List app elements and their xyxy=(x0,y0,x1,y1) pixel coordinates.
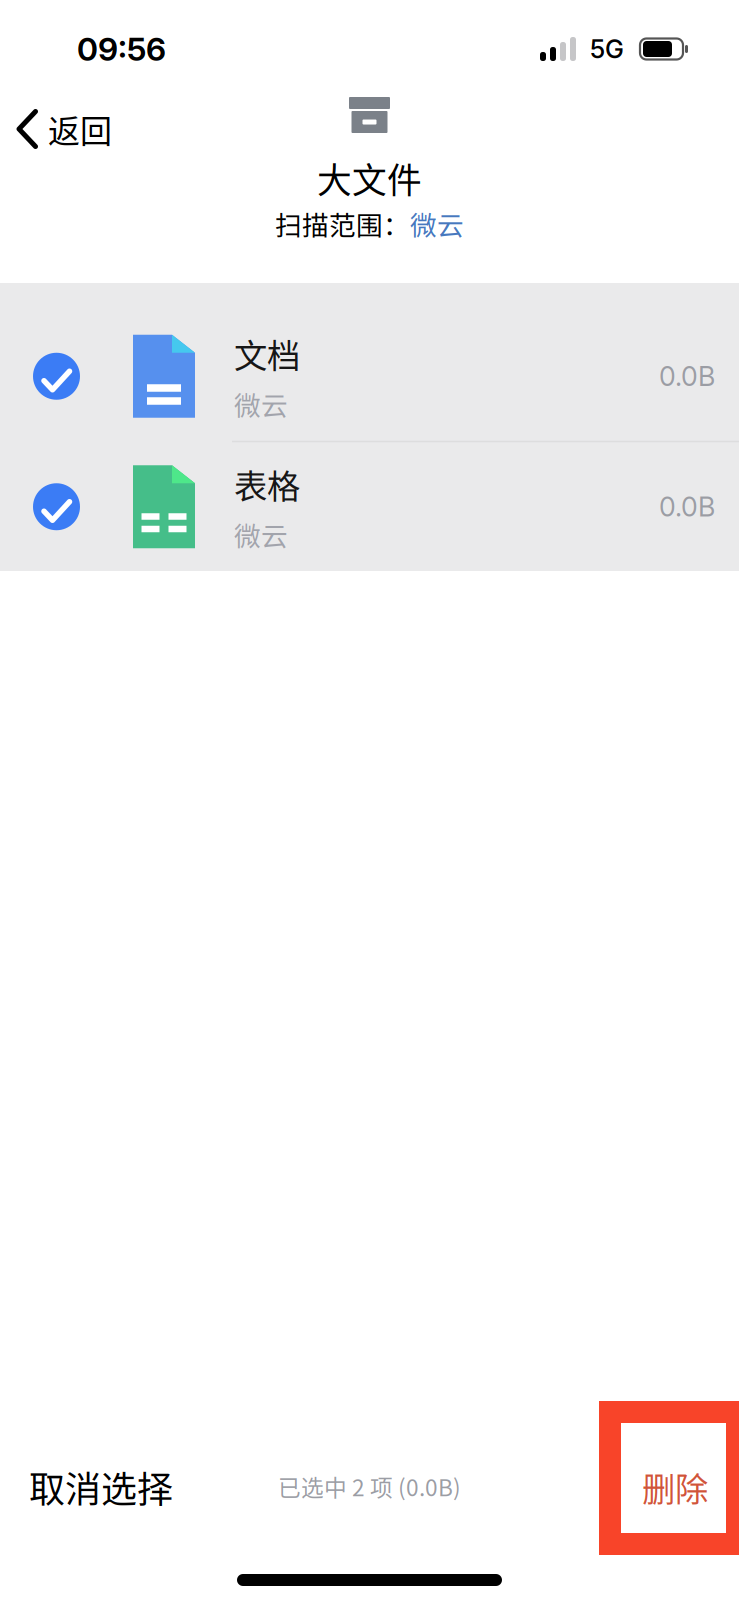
staticText: 表格 xyxy=(234,460,300,508)
button[interactable]: 取消选择 xyxy=(0,1396,193,1542)
staticText: 删除 xyxy=(642,1463,708,1511)
button[interactable]: 微云 xyxy=(410,204,464,243)
button[interactable]: 文档 xyxy=(0,312,739,441)
staticText: 返回 xyxy=(48,106,112,152)
staticText: 扫描范围： xyxy=(275,204,410,243)
staticText: 09:56 xyxy=(77,30,166,68)
staticText: 微云 xyxy=(234,515,288,554)
staticText: 5G xyxy=(590,34,624,64)
staticText: 取消选择 xyxy=(29,1461,173,1513)
button[interactable]: 删除 xyxy=(622,1396,739,1542)
button[interactable]: 表格 xyxy=(0,442,739,571)
staticText: 已选中 2 项 (0.0B) xyxy=(278,1470,461,1503)
button[interactable]: 返回 xyxy=(0,88,130,160)
staticText: 微云 xyxy=(410,204,464,243)
staticText: 大文件 xyxy=(317,153,422,203)
staticText: 微云 xyxy=(234,385,288,423)
staticText: 0.0B xyxy=(659,491,715,523)
staticText: 0.0B xyxy=(659,360,715,392)
staticText: 文档 xyxy=(234,329,300,378)
